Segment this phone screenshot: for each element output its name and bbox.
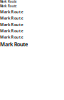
staticText: Mark Route bbox=[0, 0, 17, 3]
staticText: Mark Route bbox=[0, 34, 23, 40]
staticText: Mark Route bbox=[0, 41, 28, 48]
staticText: Mark Route bbox=[0, 22, 23, 27]
staticText: Mark Route bbox=[0, 28, 23, 33]
staticText: Mark Route bbox=[0, 9, 23, 14]
staticText: Mark Route bbox=[0, 15, 23, 21]
staticText: Mark Route bbox=[0, 4, 17, 8]
